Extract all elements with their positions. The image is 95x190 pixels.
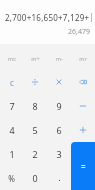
button[interactable]: m+: [23, 46, 47, 70]
staticText: =: [81, 161, 86, 172]
staticText: c: [10, 77, 14, 88]
button[interactable]: 1: [0, 142, 23, 166]
staticText: .: [58, 171, 61, 183]
staticText: 5: [32, 124, 38, 136]
staticText: 8: [32, 100, 38, 112]
staticText: 4: [9, 124, 15, 136]
button[interactable]: 9: [47, 94, 71, 118]
staticText: 1: [9, 148, 15, 160]
button[interactable]: m-: [47, 46, 71, 70]
button[interactable]: 0: [23, 166, 47, 190]
button[interactable]: 3: [47, 142, 71, 166]
button[interactable]: 5: [23, 118, 47, 142]
button[interactable]: mr: [71, 46, 95, 70]
button[interactable]: Divide: [23, 70, 47, 94]
button[interactable]: Minus: [71, 94, 95, 118]
button[interactable]: 4: [0, 118, 23, 142]
staticText: mr: [79, 55, 87, 62]
staticText: m-: [56, 55, 63, 62]
button[interactable]: c: [0, 70, 23, 94]
button[interactable]: Plus: [71, 118, 95, 142]
staticText: m+: [31, 55, 40, 62]
staticText: 2,700+16,650+7,129+: [5, 12, 90, 23]
button[interactable]: .: [47, 166, 71, 190]
button[interactable]: Multiply: [47, 70, 71, 94]
button[interactable]: 6: [47, 118, 71, 142]
staticText: 26,479: [68, 27, 90, 37]
button[interactable]: mc: [0, 46, 23, 70]
button[interactable]: 2: [23, 142, 47, 166]
button[interactable]: Equals: [71, 142, 95, 190]
button[interactable]: %: [0, 166, 23, 190]
staticText: mc: [8, 55, 16, 62]
staticText: 7: [9, 100, 15, 112]
staticText: 3: [56, 148, 62, 160]
staticText: 6: [56, 124, 62, 136]
staticText: 0: [32, 172, 38, 184]
button[interactable]: Backspace: [71, 70, 95, 94]
button[interactable]: 8: [23, 94, 47, 118]
staticText: %: [8, 173, 15, 184]
staticText: 9: [56, 100, 62, 112]
staticText: 2: [32, 148, 38, 160]
button[interactable]: 7: [0, 94, 23, 118]
